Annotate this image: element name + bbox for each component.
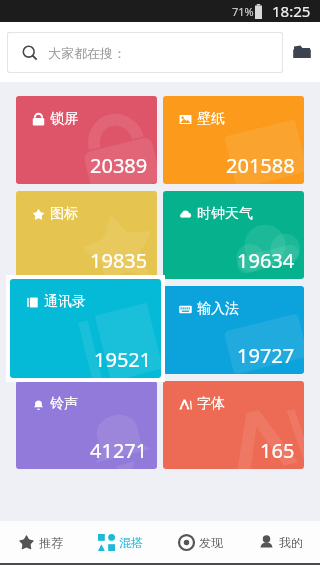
staticText: 18:25 [272,1,311,21]
staticText: 图标 [50,205,78,223]
button[interactable]: 锁屏 [16,96,157,184]
staticText: 发现 [199,535,223,550]
staticText: 41271 [90,437,148,464]
staticText: 混搭 [119,535,143,550]
staticText: 19835 [90,247,148,274]
staticText: 20389 [90,152,148,179]
button[interactable]: Folder [283,22,320,82]
staticText: 201588 [226,152,295,179]
button[interactable]: 我的 [240,521,320,563]
button[interactable]: 图标 [16,191,157,279]
button[interactable]: 铃声 [16,381,157,469]
staticText: 我的 [279,535,303,550]
staticText: 71% [232,4,254,19]
staticText: 锁屏 [50,110,78,128]
button[interactable]: 推荐 [0,521,80,563]
staticText: 19727 [237,342,295,369]
staticText: 铃声 [50,395,78,413]
staticText: 输入法 [197,300,239,318]
button[interactable]: 时钟天气 [163,191,304,279]
button[interactable]: 输入法 [163,286,304,374]
button[interactable]: 壁纸 [163,96,304,184]
button[interactable]: 通讯录 [10,279,161,378]
staticText: 时钟天气 [197,205,253,223]
staticText: 19634 [237,247,295,274]
button[interactable]: 大家都在搜： [8,33,282,72]
staticText: 字体 [197,395,225,413]
staticText: 19521 [94,346,152,373]
staticText: 壁纸 [197,110,225,128]
staticText: 165 [260,437,295,464]
staticText: 通讯录 [44,293,86,311]
staticText: 推荐 [39,535,63,550]
button[interactable]: 发现 [160,521,240,563]
staticText: 大家都在搜： [48,45,126,61]
button[interactable]: 字体 [163,381,304,469]
button[interactable]: 混搭 [80,521,160,563]
